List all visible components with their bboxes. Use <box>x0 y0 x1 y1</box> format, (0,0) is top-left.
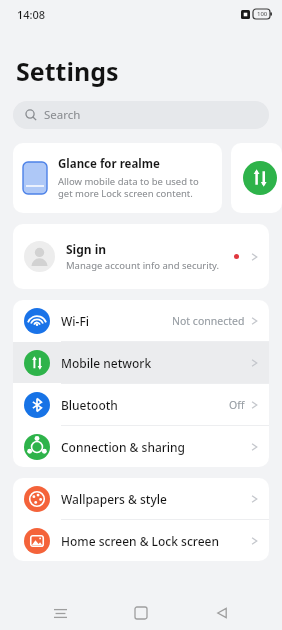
staticText: 14:08 <box>17 7 46 22</box>
staticText: Allow mobile data to be used to get more… <box>58 175 212 200</box>
staticText: Connection & sharing <box>61 439 251 455</box>
staticText: Glance for realme <box>58 156 160 172</box>
staticText: 100 <box>257 10 268 18</box>
button[interactable]: Wi-Fi <box>13 300 269 341</box>
button[interactable]: Wallpapers & style <box>13 478 269 519</box>
button[interactable]: Sign in <box>13 224 269 289</box>
button[interactable]: Home <box>120 596 162 630</box>
staticText: Settings <box>16 54 119 88</box>
staticText: Off <box>229 398 245 412</box>
staticText: Manage account info and security. <box>66 259 220 272</box>
button[interactable]: Connection & sharing <box>13 426 269 467</box>
button[interactable]: Mobile network <box>13 342 269 383</box>
button[interactable]: Back <box>201 596 243 630</box>
staticText: Not connected <box>172 314 245 328</box>
staticText: Sign in <box>66 241 107 257</box>
staticText: Home screen & Lock screen <box>61 533 251 549</box>
staticText: Wallpapers & style <box>61 491 251 507</box>
staticText: Wi-Fi <box>61 313 172 329</box>
button[interactable]: Mobile network <box>231 143 282 213</box>
staticText: Search <box>44 107 81 123</box>
staticText: Mobile network <box>61 355 251 371</box>
button[interactable]: Home screen & Lock screen <box>13 520 269 561</box>
button[interactable]: Glance for realme <box>13 143 222 213</box>
button[interactable]: Bluetooth <box>13 384 269 425</box>
button[interactable]: Recents <box>39 596 81 630</box>
button[interactable]: Search <box>13 101 269 129</box>
staticText: Bluetooth <box>61 397 229 413</box>
